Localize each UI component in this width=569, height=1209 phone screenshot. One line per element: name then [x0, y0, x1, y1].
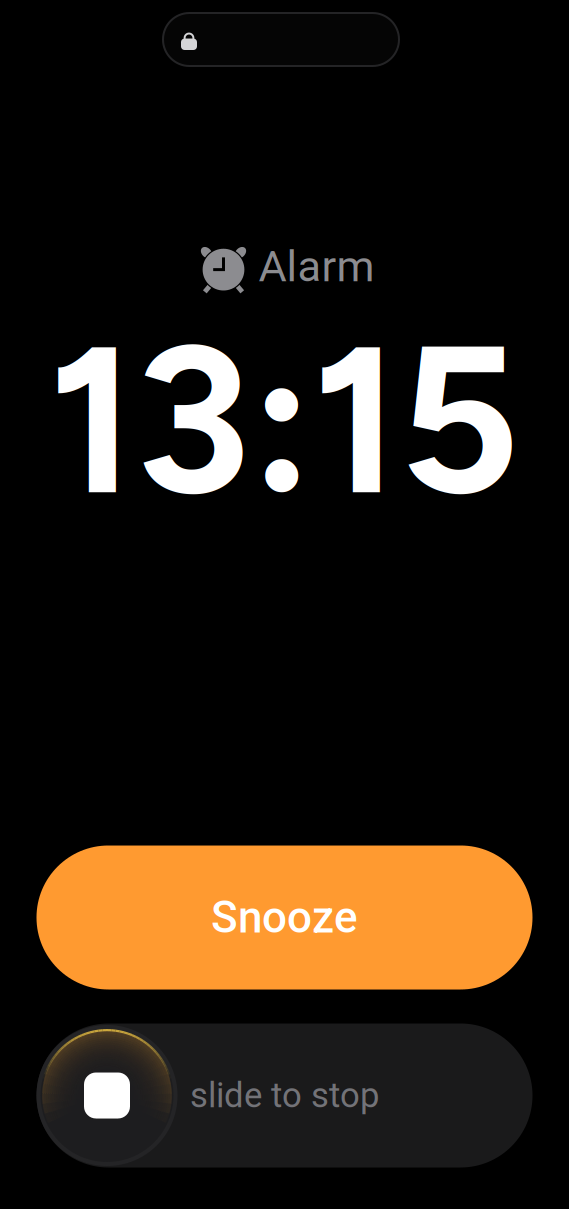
staticText: slide to stop — [190, 1075, 379, 1116]
button[interactable]: Snooze — [36, 845, 532, 989]
button[interactable]: slide to stop — [36, 1023, 532, 1167]
staticText: Alarm — [258, 241, 374, 292]
staticText: 13:15 — [48, 296, 519, 544]
staticText: Snooze — [211, 892, 358, 943]
